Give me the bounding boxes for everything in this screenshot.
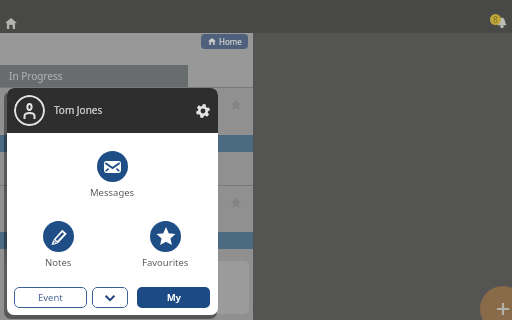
button[interactable]: My	[137, 287, 210, 308]
button[interactable]: Settings	[193, 101, 212, 120]
button[interactable]: Messages	[78, 151, 146, 199]
button[interactable]: Home	[201, 34, 248, 49]
button[interactable]: Favourites	[131, 221, 199, 269]
staticText: Messages	[90, 186, 135, 199]
staticText: Home	[219, 36, 242, 47]
staticText: Tom Jones	[54, 103, 103, 117]
staticText: 8	[493, 14, 498, 25]
button[interactable]: Add	[480, 286, 512, 320]
button[interactable]: Notes	[24, 221, 92, 269]
button[interactable]: More options	[92, 287, 128, 308]
button[interactable]: Event	[14, 287, 87, 308]
staticText: Favourites	[142, 256, 189, 269]
staticText: In Progress	[9, 69, 63, 83]
button[interactable]: Home	[1, 13, 21, 33]
staticText: Event	[38, 291, 63, 304]
staticText: My	[167, 291, 181, 304]
staticText: Notes	[45, 256, 72, 269]
button[interactable]: Notifications	[486, 6, 510, 30]
